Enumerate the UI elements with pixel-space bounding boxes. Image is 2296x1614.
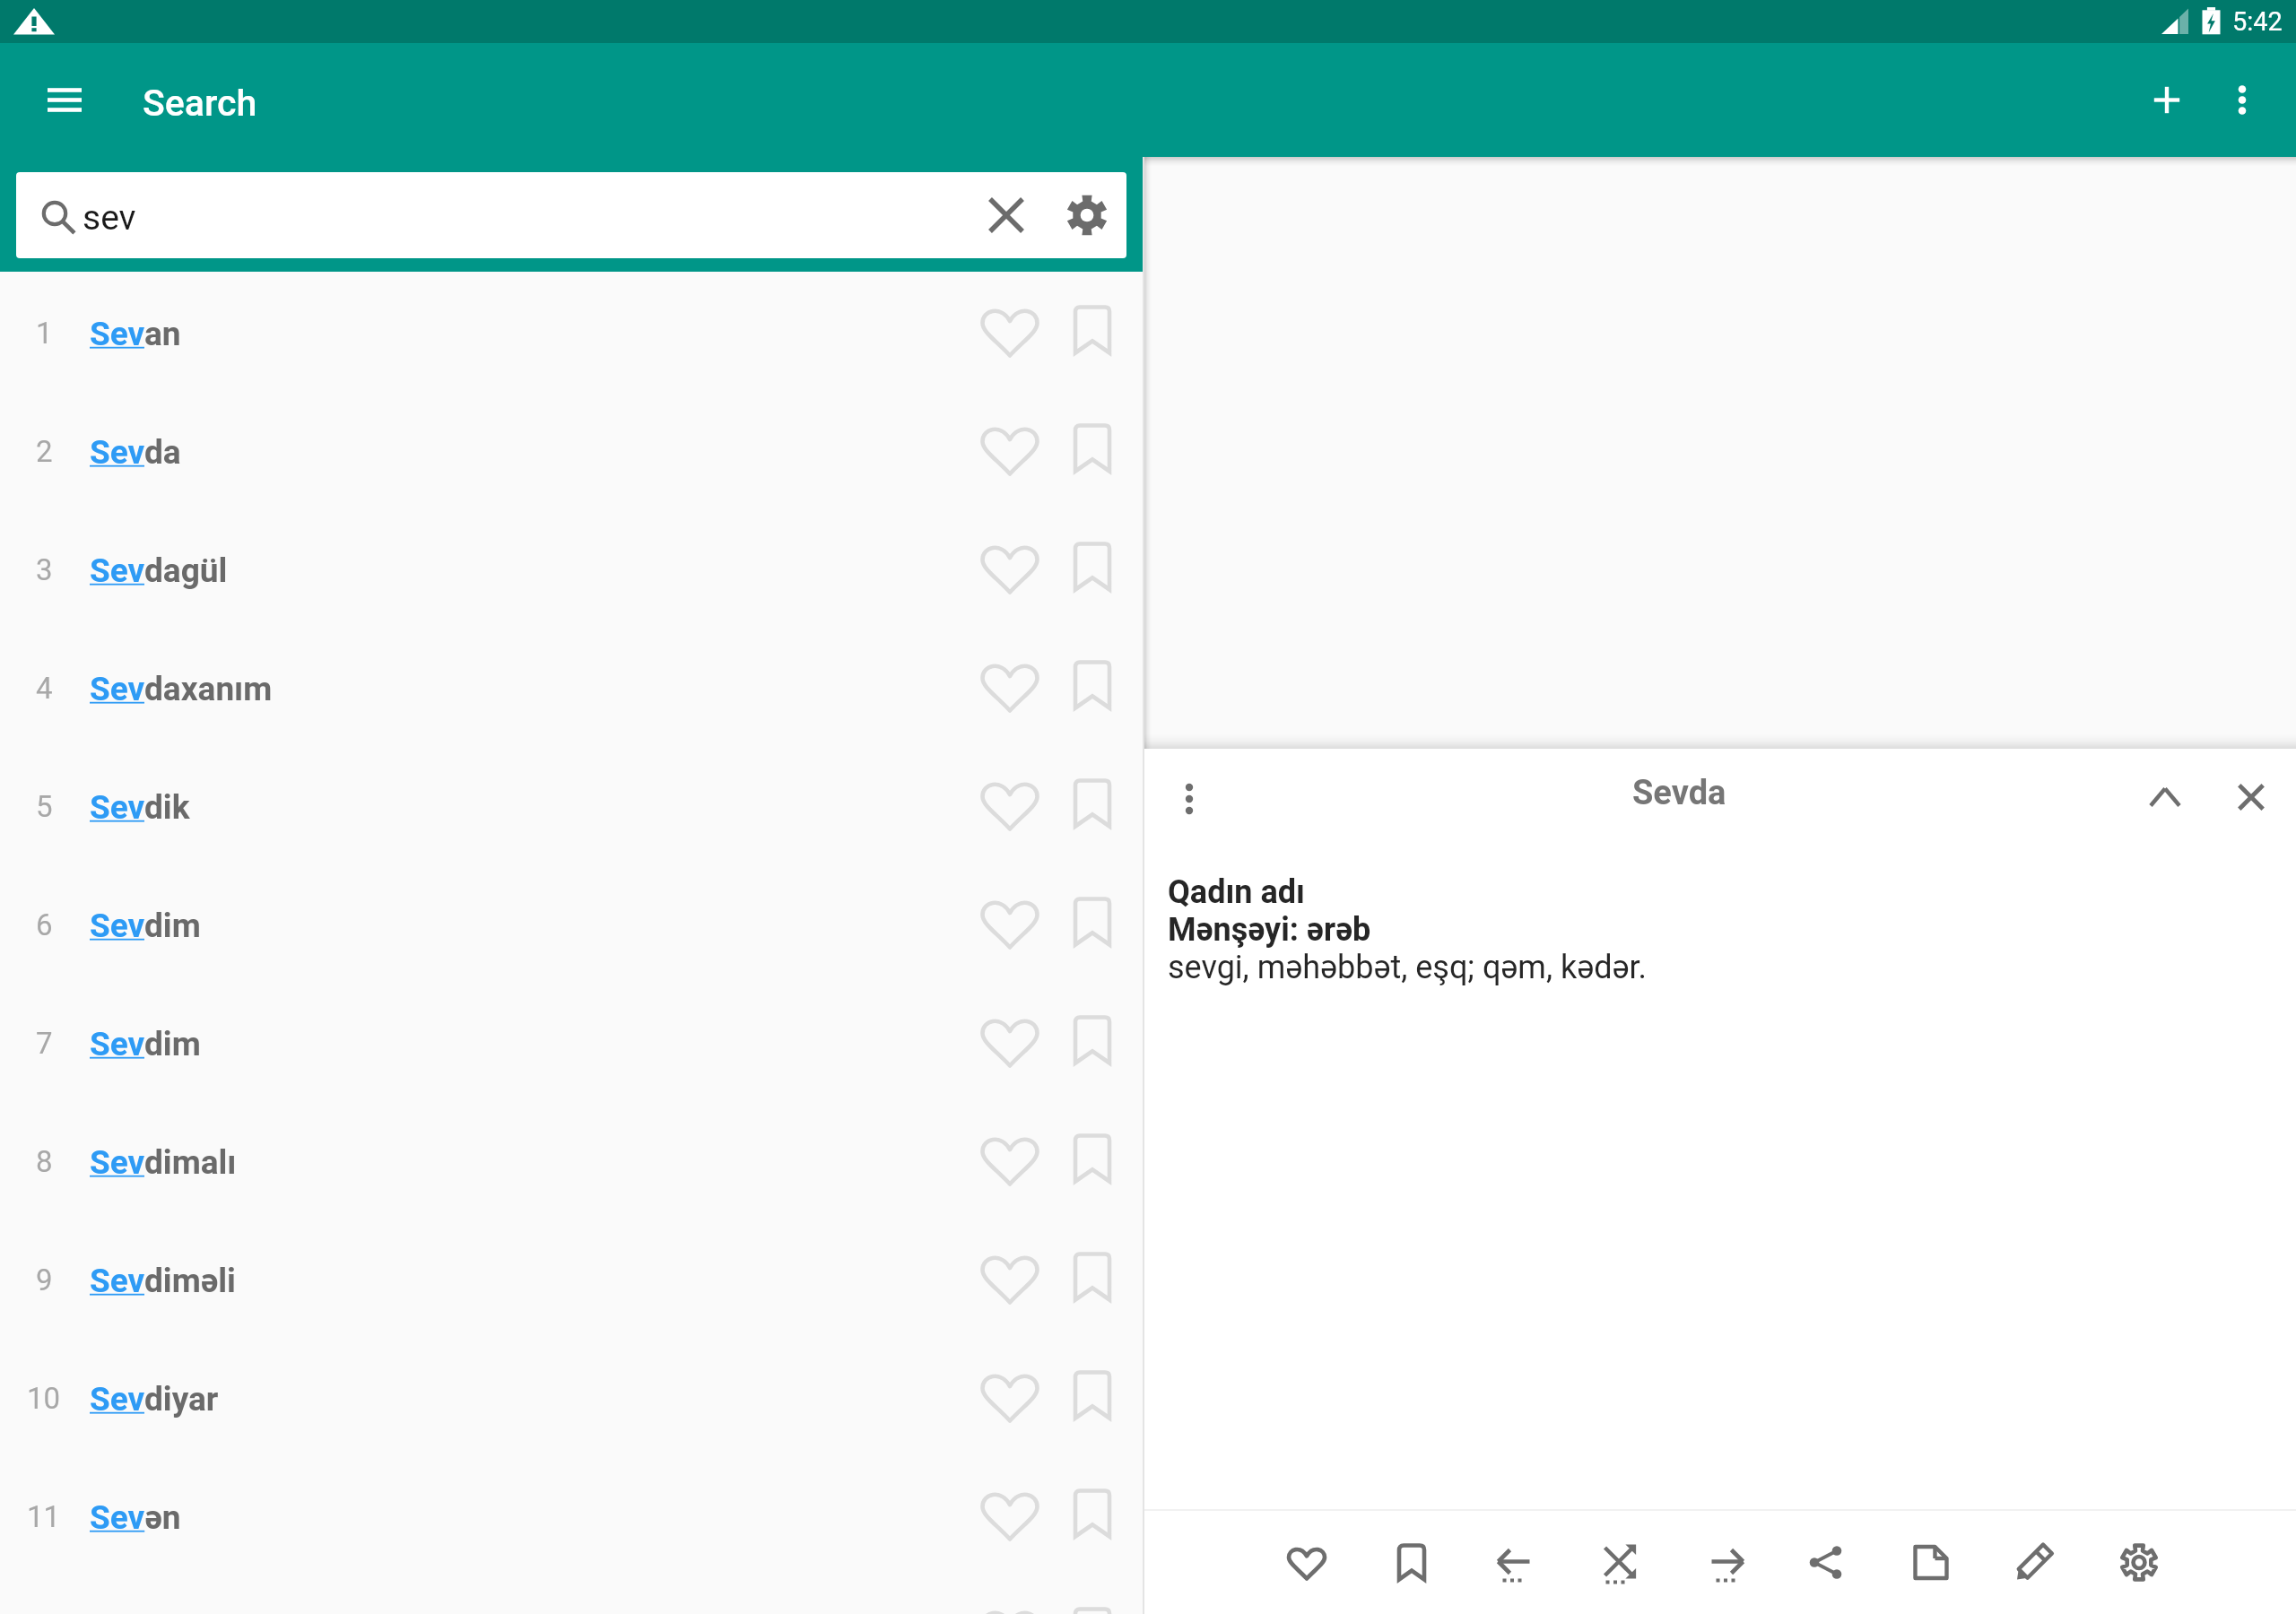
button[interactable]: Favourite <box>969 637 1051 735</box>
staticText: 10 <box>27 1381 61 1416</box>
button[interactable]: Add <box>2117 43 2217 157</box>
button[interactable]: Edit <box>1991 1511 2077 1614</box>
button[interactable]: Bookmark <box>1051 1584 1134 1614</box>
button[interactable]: Next <box>1684 1511 1770 1614</box>
staticText: Sevda <box>90 433 181 472</box>
staticText: 9 <box>36 1263 53 1297</box>
button[interactable]: Favourite <box>969 1228 1051 1327</box>
staticText: Sevdim <box>90 1025 201 1063</box>
staticText: Sevdiməli <box>90 1262 236 1300</box>
button[interactable]: Previous <box>1471 1511 1557 1614</box>
button[interactable]: Copy <box>1888 1511 1974 1614</box>
button[interactable]: Bookmark <box>1051 1465 1134 1564</box>
staticText: sev <box>83 197 136 239</box>
button[interactable]: Bookmark <box>1051 1347 1134 1445</box>
button[interactable]: Open navigation drawer <box>22 43 108 157</box>
button[interactable]: Favourite <box>969 518 1051 617</box>
staticText: Sevən <box>90 1498 181 1537</box>
staticText: Sevdagül <box>90 551 228 590</box>
staticText: 5:42 <box>2232 6 2283 37</box>
staticText: 7 <box>36 1026 53 1061</box>
staticText: 1 <box>36 316 53 351</box>
staticText: 5 <box>36 789 53 824</box>
staticText: Sevda <box>1632 773 1726 813</box>
button[interactable]: Clear search <box>965 172 1048 258</box>
staticText: 6 <box>36 907 53 942</box>
button[interactable]: 11 <box>0 1455 1143 1574</box>
button[interactable]: Bookmark <box>1051 282 1134 380</box>
button[interactable]: Favourite <box>969 1584 1051 1614</box>
button[interactable]: Collapse <box>2122 755 2208 839</box>
button[interactable]: Favourite <box>969 755 1051 854</box>
button[interactable]: 10 <box>0 1337 1143 1455</box>
button[interactable]: Settings <box>2096 1511 2182 1614</box>
button[interactable]: Favourite <box>969 1347 1051 1445</box>
button[interactable]: More options <box>2196 43 2289 157</box>
button[interactable]: 5 <box>0 745 1143 863</box>
button[interactable]: Favourite <box>969 992 1051 1090</box>
button[interactable]: Bookmark <box>1051 755 1134 854</box>
staticText: 3 <box>36 552 53 587</box>
button[interactable]: Favourite <box>969 400 1051 499</box>
button[interactable]: Bookmark <box>1051 518 1134 617</box>
staticText: Sevdiyar <box>90 1380 219 1419</box>
staticText: Search <box>143 82 257 125</box>
button[interactable]: Entry options <box>1146 757 1232 841</box>
button[interactable]: Bookmark <box>1051 873 1134 972</box>
button[interactable]: Share <box>1782 1511 1868 1614</box>
button[interactable]: Close <box>2208 755 2294 839</box>
button[interactable]: Bookmark <box>1051 1110 1134 1209</box>
button[interactable]: Favourite <box>969 1465 1051 1564</box>
button[interactable]: Favourite <box>969 873 1051 972</box>
staticText: Sevdaxanım <box>90 670 273 708</box>
button[interactable]: Bookmark <box>1051 637 1134 735</box>
button[interactable]: Search settings <box>1048 172 1126 258</box>
staticText: Sevdimalı <box>90 1143 237 1182</box>
button[interactable]: 2 <box>0 390 1143 508</box>
button[interactable]: 3 <box>0 508 1143 627</box>
staticText: Sevdim <box>90 907 201 945</box>
staticText: Sevan <box>90 315 181 353</box>
button[interactable]: 4 <box>0 627 1143 745</box>
staticText: Qadın adı Mənşəyi: ərəb sevgi, məhəbbət,… <box>1168 873 1647 986</box>
staticText: 8 <box>36 1144 53 1179</box>
staticText: Sevdik <box>90 788 190 827</box>
button[interactable]: sev <box>16 172 1126 258</box>
button[interactable]: Bookmark <box>1369 1511 1455 1614</box>
staticText: 11 <box>27 1499 61 1534</box>
staticText: 2 <box>36 434 53 469</box>
button[interactable]: Random <box>1576 1511 1662 1614</box>
button[interactable]: Bookmark <box>1051 400 1134 499</box>
button[interactable]: 6 <box>0 863 1143 982</box>
button[interactable]: Bookmark <box>1051 1228 1134 1327</box>
button[interactable]: Bookmark <box>1051 992 1134 1090</box>
button[interactable]: 7 <box>0 982 1143 1100</box>
button[interactable]: 8 <box>0 1100 1143 1219</box>
button[interactable]: 1 <box>0 272 1143 390</box>
button[interactable]: 9 <box>0 1219 1143 1337</box>
button[interactable]: Favourite <box>969 282 1051 380</box>
staticText: 4 <box>36 671 53 706</box>
button[interactable]: Favourite <box>969 1110 1051 1209</box>
button[interactable]: Favourite <box>1264 1511 1350 1614</box>
